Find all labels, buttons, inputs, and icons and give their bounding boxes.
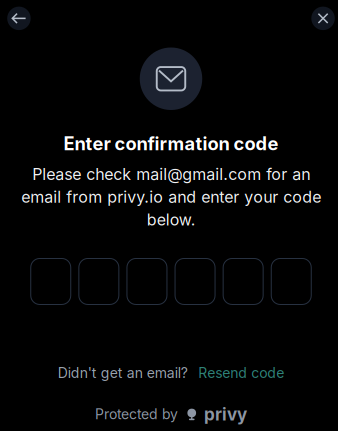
button[interactable]: Close xyxy=(311,7,335,30)
staticText: Didn't get an email? xyxy=(58,364,188,381)
staticText: Resend code xyxy=(198,364,284,381)
button[interactable]: Back xyxy=(7,7,31,30)
staticText: Please check mail@gmail.com for an email… xyxy=(21,165,321,229)
staticText: Protected by xyxy=(95,406,178,423)
button[interactable]: Resend code xyxy=(198,364,284,381)
staticText: Enter confirmation code xyxy=(63,132,278,155)
staticText: privy xyxy=(204,404,247,424)
